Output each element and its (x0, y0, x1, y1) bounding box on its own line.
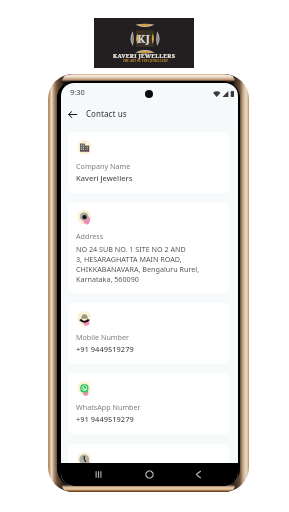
staticText: Mobile Number (76, 332, 129, 342)
staticText: KJ (137, 31, 150, 47)
staticText: KAVERI JEWELLERS (113, 52, 176, 60)
staticText: Address (76, 231, 104, 241)
staticText: Company Name (76, 161, 131, 171)
button[interactable]: Recent apps (82, 463, 114, 486)
button[interactable]: Working Hours (68, 444, 229, 486)
staticText: +91 9449519279 (76, 344, 134, 354)
button[interactable]: Contact us (86, 108, 127, 119)
button[interactable]: Back (182, 463, 214, 486)
staticText: THE ART OF FINE JEWELLERY (123, 59, 169, 63)
staticText: WhatsApp Number (76, 402, 141, 412)
staticText: 9:30 (70, 87, 85, 97)
button[interactable]: Back (63, 105, 81, 123)
staticText: Kaveri Jewellers (76, 173, 133, 183)
staticText: +91 9449519279 (76, 414, 134, 424)
staticText: Contact us (86, 108, 127, 119)
staticText: NO 24 SUB NO. 1 SITE NO 2 AND 3, HESARAG… (76, 244, 200, 284)
button[interactable]: Home (133, 463, 165, 486)
button[interactable]: Address (68, 202, 229, 293)
button[interactable]: Mobile Number (68, 303, 229, 364)
button[interactable]: WhatsApp Number (68, 373, 229, 434)
staticText: Working Hours (76, 473, 127, 483)
button[interactable]: Company Name (68, 132, 229, 193)
